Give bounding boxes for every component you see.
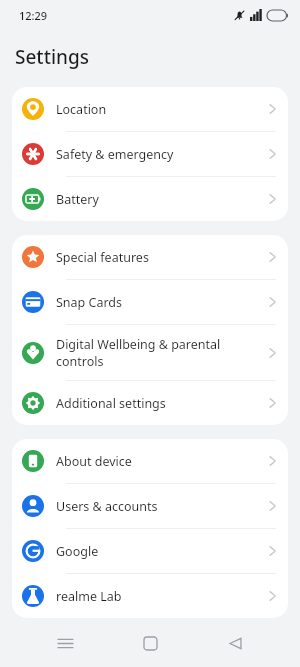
staticText: Snap Cards: [56, 294, 261, 311]
staticText: 12:29: [19, 8, 48, 23]
staticText: About device: [56, 453, 261, 470]
staticText: Additional settings: [56, 395, 261, 412]
button[interactable]: Additional settings: [12, 381, 288, 425]
button[interactable]: Safety & emergency: [12, 132, 288, 176]
button[interactable]: Location: [12, 87, 288, 131]
button[interactable]: Recent apps: [45, 623, 85, 663]
staticText: Settings: [15, 44, 89, 70]
button[interactable]: Home: [130, 623, 170, 663]
button[interactable]: Users & accounts: [12, 484, 288, 528]
staticText: Special features: [56, 249, 261, 266]
staticText: realme Lab: [56, 588, 261, 605]
button[interactable]: Back: [215, 623, 255, 663]
staticText: Safety & emergency: [56, 146, 261, 163]
button[interactable]: About device: [12, 439, 288, 483]
staticText: Google: [56, 543, 261, 560]
staticText: Battery: [56, 191, 261, 208]
button[interactable]: Snap Cards: [12, 280, 288, 324]
button[interactable]: Digital Wellbeing & parental controls: [12, 325, 288, 380]
staticText: Digital Wellbeing & parental controls: [56, 336, 261, 369]
staticText: Users & accounts: [56, 498, 261, 515]
staticText: Location: [56, 101, 261, 118]
button[interactable]: Battery: [12, 177, 288, 221]
button[interactable]: Special features: [12, 235, 288, 279]
button[interactable]: realme Lab: [12, 574, 288, 618]
button[interactable]: Google: [12, 529, 288, 573]
